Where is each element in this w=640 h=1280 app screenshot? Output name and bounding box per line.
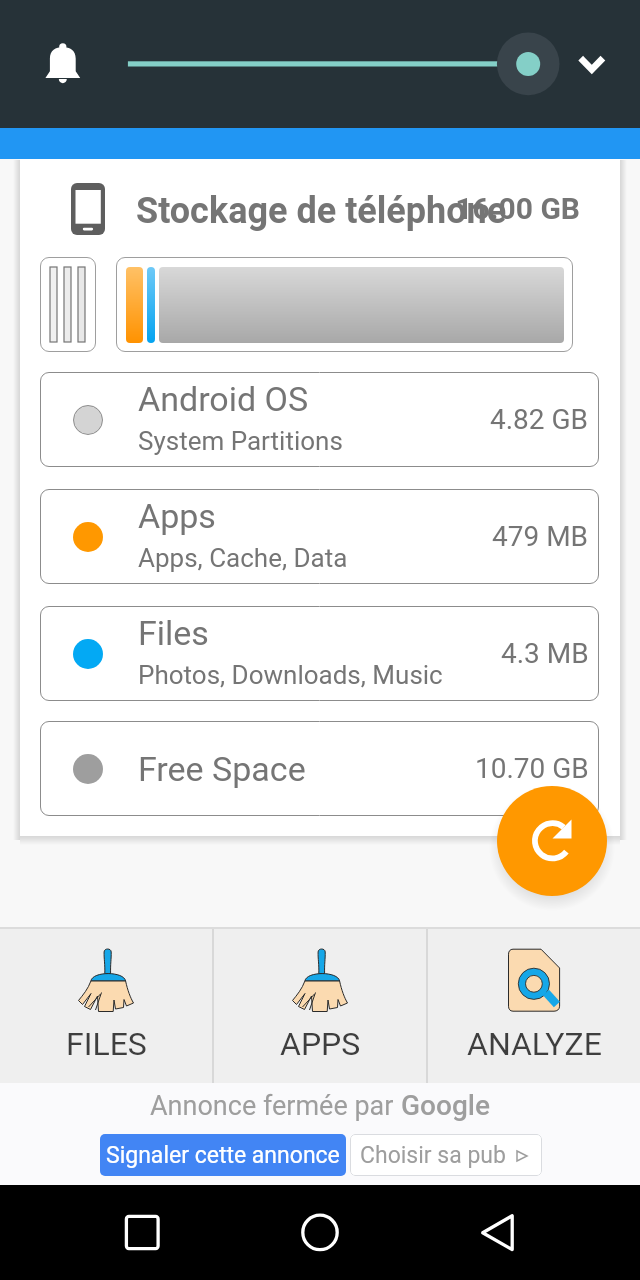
button[interactable]: ANALYZE bbox=[428, 929, 640, 1083]
staticText: Annonce fermée par bbox=[150, 1090, 401, 1122]
button[interactable]: Apps bbox=[40, 489, 599, 584]
staticText: Photos, Downloads, Music bbox=[138, 660, 443, 690]
staticText: ANALYZE bbox=[467, 1025, 602, 1063]
button[interactable]: Home bbox=[290, 1202, 350, 1262]
button[interactable]: APPS bbox=[214, 929, 426, 1083]
staticText: 16.00 GB bbox=[440, 191, 580, 226]
staticText: 10.70 GB bbox=[475, 752, 589, 785]
staticText: Google bbox=[401, 1089, 491, 1122]
staticText: Android OS bbox=[138, 379, 309, 419]
button[interactable]: Recents bbox=[112, 1202, 172, 1262]
staticText: Free Space bbox=[138, 749, 306, 789]
staticText: Choisir sa pub bbox=[360, 1142, 506, 1169]
staticText: Stockage de téléphone bbox=[136, 190, 507, 232]
button[interactable]: Signaler cette annonce bbox=[100, 1134, 346, 1176]
staticText: Signaler cette annonce bbox=[106, 1142, 340, 1169]
button[interactable]: Free Space bbox=[40, 721, 599, 816]
staticText: 479 MB bbox=[492, 520, 589, 553]
staticText: System Partitions bbox=[138, 426, 343, 456]
button[interactable]: Back bbox=[468, 1202, 528, 1262]
staticText: Files bbox=[138, 613, 209, 653]
button[interactable]: Android OS bbox=[40, 372, 599, 467]
staticText: 4.82 GB bbox=[490, 403, 589, 436]
staticText: Apps, Cache, Data bbox=[138, 543, 348, 573]
button[interactable]: Choisir sa pub bbox=[350, 1134, 542, 1176]
button[interactable]: Refresh bbox=[497, 786, 607, 896]
button[interactable]: FILES bbox=[0, 929, 212, 1083]
button[interactable]: Files bbox=[40, 606, 599, 701]
staticText: Apps bbox=[138, 496, 216, 536]
staticText: 4.3 MB bbox=[501, 637, 589, 670]
staticText: FILES bbox=[66, 1025, 147, 1063]
staticText: APPS bbox=[280, 1025, 361, 1063]
